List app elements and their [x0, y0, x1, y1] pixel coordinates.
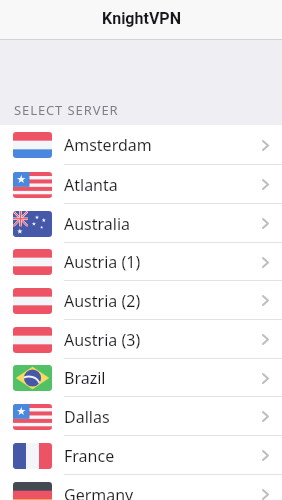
staticText: Australia	[64, 213, 131, 235]
staticText: Austria (3)	[64, 329, 141, 351]
other: Open Austria (1)	[262, 257, 269, 268]
other: Open Atlanta	[262, 179, 269, 190]
button[interactable]: Germany	[0, 475, 282, 500]
button[interactable]: Austria (3)	[0, 320, 282, 359]
button[interactable]: Austria (2)	[0, 281, 282, 320]
staticText: Germany	[64, 484, 134, 500]
staticText: Atlanta	[64, 174, 118, 196]
staticText: Dallas	[64, 406, 110, 428]
staticText: KnightVPN	[102, 9, 181, 28]
other: Open Australia	[262, 218, 269, 229]
other: Open Austria (3)	[262, 334, 269, 345]
other: Open Amsterdam	[262, 140, 269, 151]
other: Open France	[262, 450, 269, 461]
button[interactable]: Brazil	[0, 359, 282, 397]
staticText: Brazil	[64, 367, 106, 389]
staticText: Austria (1)	[64, 251, 141, 273]
button[interactable]: Atlanta	[0, 165, 282, 204]
other: Open Austria (2)	[262, 295, 269, 306]
button[interactable]: France	[0, 436, 282, 475]
staticText: France	[64, 445, 115, 467]
button[interactable]: Amsterdam	[0, 125, 282, 165]
staticText: Austria (2)	[64, 290, 141, 312]
staticText: SELECT SERVER	[14, 101, 119, 119]
button[interactable]: Dallas	[0, 397, 282, 436]
button[interactable]: Austria (1)	[0, 243, 282, 281]
other: Open Brazil	[262, 373, 269, 384]
staticText: Amsterdam	[64, 134, 152, 156]
other: Open Germany	[262, 489, 269, 500]
button[interactable]: Australia	[0, 204, 282, 243]
other: Open Dallas	[262, 411, 269, 422]
